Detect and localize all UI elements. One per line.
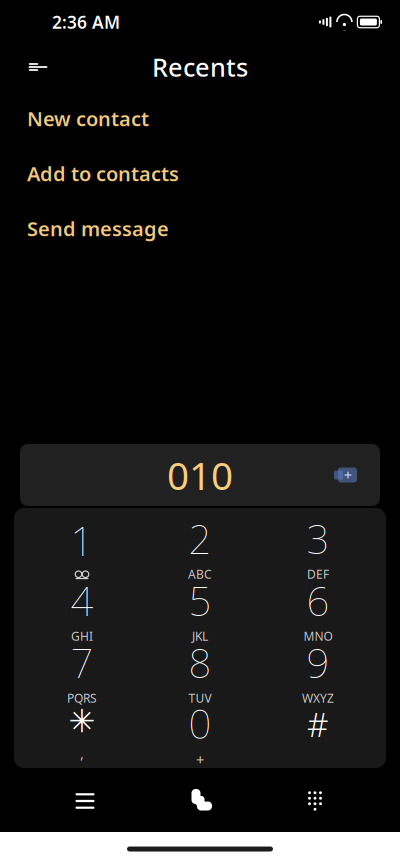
button[interactable]: 6 (259, 578, 377, 640)
button[interactable]: 5 (141, 578, 259, 640)
staticText: 2 (188, 512, 211, 565)
button[interactable]: Call log (30, 770, 140, 832)
button[interactable]: Delete (322, 455, 368, 495)
button[interactable]: 2 (141, 516, 259, 578)
staticText: JKL (192, 628, 208, 644)
staticText: 4 (70, 574, 93, 627)
staticText: Add to contacts (27, 160, 179, 187)
staticText: PQRS (67, 690, 97, 706)
staticText: 3 (306, 512, 329, 565)
staticText: 9 (306, 636, 329, 689)
button[interactable]: 4 (23, 578, 141, 640)
staticText: ✳ (68, 703, 95, 739)
staticText: New contact (27, 105, 149, 132)
button[interactable]: New contact (0, 91, 400, 146)
staticText: Send message (27, 215, 169, 242)
staticText: 6 (306, 574, 329, 627)
button[interactable]: Star (23, 702, 141, 764)
staticText: TUV (188, 690, 211, 706)
staticText: GHI (71, 628, 93, 644)
button[interactable]: Pound (259, 702, 377, 764)
button[interactable]: 9 (259, 640, 377, 702)
staticText: + (196, 750, 204, 769)
button[interactable]: Back (16, 45, 60, 89)
staticText: Recents (152, 50, 248, 84)
button[interactable]: Zero, plus (141, 702, 259, 764)
button[interactable]: Keypad (260, 770, 370, 832)
staticText: WXYZ (302, 690, 334, 706)
button[interactable]: 3 (259, 516, 377, 578)
button[interactable]: Call (140, 770, 260, 832)
staticText: MNO (303, 628, 332, 644)
staticText: 7 (70, 636, 93, 689)
button[interactable]: Send message (0, 201, 400, 256)
staticText: 5 (188, 574, 211, 627)
button[interactable]: Add to contacts (0, 146, 400, 201)
staticText: , (80, 743, 84, 763)
button[interactable]: One, voicemail (23, 516, 141, 578)
staticText: 8 (188, 636, 211, 689)
button[interactable]: 8 (141, 640, 259, 702)
button[interactable]: 7 (23, 640, 141, 702)
staticText: 2:36 AM (52, 10, 120, 33)
staticText: 1 (70, 514, 93, 567)
staticText: DEF (307, 566, 329, 582)
staticText: 010 (167, 449, 233, 501)
staticText: ABC (188, 566, 212, 582)
staticText: # (307, 702, 329, 746)
staticText: 0 (188, 697, 211, 750)
